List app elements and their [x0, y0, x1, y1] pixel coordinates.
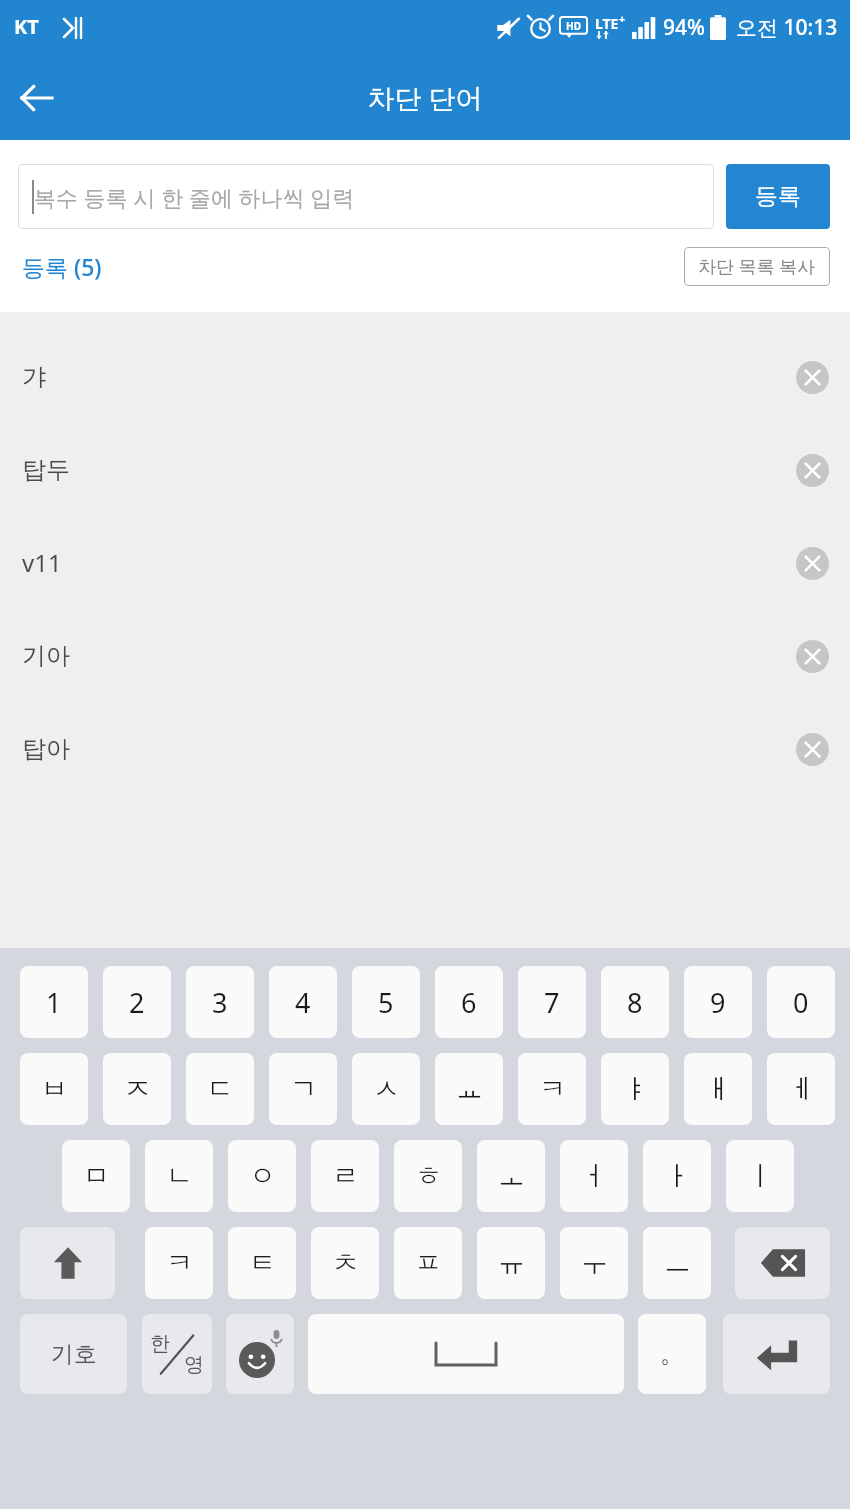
button[interactable]: ㄴ [145, 1140, 213, 1212]
staticText: 차단 목록 복사 [698, 254, 816, 279]
staticText: ㄱ [290, 1072, 317, 1106]
button[interactable]: 0 [767, 966, 835, 1038]
staticText: ㅈ [124, 1072, 151, 1106]
button[interactable]: ㅠ [477, 1227, 545, 1299]
staticText: ㅊ [332, 1246, 359, 1280]
button[interactable]: 기호 [20, 1314, 127, 1394]
button[interactable]: 8 [601, 966, 669, 1038]
button[interactable]: ㄱ [269, 1053, 337, 1125]
staticText: 기호 [51, 1340, 97, 1369]
button[interactable]: Emoji and voice input [226, 1314, 294, 1394]
button[interactable]: 1 [20, 966, 88, 1038]
button[interactable]: ㅈ [103, 1053, 171, 1125]
button[interactable]: ㅋ [518, 1053, 586, 1125]
staticText: 한 [150, 1331, 170, 1356]
button[interactable]: Backspace [735, 1227, 830, 1299]
staticText: 8 [627, 984, 643, 1021]
button[interactable]: ㅐ [684, 1053, 752, 1125]
button[interactable]: ㅡ [643, 1227, 711, 1299]
staticText: 9 [710, 984, 726, 1021]
button[interactable]: ㅛ [435, 1053, 503, 1125]
button[interactable]: ㅁ [62, 1140, 130, 1212]
button[interactable]: ㅌ [228, 1227, 296, 1299]
button[interactable]: Delete 탑두 [788, 446, 836, 494]
button[interactable]: Delete v11 [788, 539, 836, 587]
button[interactable]: 등록 [726, 164, 830, 229]
button[interactable]: 3 [186, 966, 254, 1038]
staticText: 0 [793, 984, 809, 1021]
button[interactable]: ㅣ [726, 1140, 794, 1212]
button[interactable]: v11 [0, 516, 850, 609]
button[interactable]: ㅇ [228, 1140, 296, 1212]
staticText: ㄷ [207, 1072, 234, 1106]
staticText: ㅔ [788, 1072, 815, 1106]
button[interactable]: Enter [723, 1314, 830, 1394]
button[interactable]: 탑아 [0, 702, 850, 795]
staticText: ㅁ [83, 1159, 110, 1193]
staticText: 3 [212, 984, 228, 1021]
button[interactable]: Delete 기아 [788, 632, 836, 680]
staticText: ㅐ [705, 1072, 732, 1106]
button[interactable]: ㅎ [394, 1140, 462, 1212]
staticText: ㅇ [249, 1159, 276, 1193]
staticText: 등록 [755, 182, 801, 211]
button[interactable]: 4 [269, 966, 337, 1038]
button[interactable]: ㅋ [145, 1227, 213, 1299]
button[interactable]: 등록 (5) [22, 251, 102, 282]
button[interactable]: Back [8, 69, 66, 127]
button[interactable]: 2 [103, 966, 171, 1038]
staticText: ㅓ [581, 1159, 608, 1193]
button[interactable]: ㅂ [20, 1053, 88, 1125]
staticText: HD [566, 19, 581, 33]
button[interactable]: Delete 갸 [788, 353, 836, 401]
staticText: ㅅ [373, 1072, 400, 1106]
staticText: 차단 단어 [367, 79, 483, 116]
staticText: ㅗ [498, 1159, 525, 1193]
button[interactable]: ㅗ [477, 1140, 545, 1212]
button[interactable]: ㅑ [601, 1053, 669, 1125]
button[interactable]: ㅔ [767, 1053, 835, 1125]
button[interactable]: ㅊ [311, 1227, 379, 1299]
button[interactable]: Space [308, 1314, 624, 1394]
staticText: 갸 [22, 362, 46, 392]
button[interactable]: ㅅ [352, 1053, 420, 1125]
button[interactable]: 복수 등록 시 한 줄에 하나씩 입력 [18, 164, 714, 229]
button[interactable]: Shift [20, 1227, 115, 1299]
staticText: ㅍ [415, 1246, 442, 1280]
button[interactable]: Korean English toggle [142, 1314, 212, 1394]
button[interactable]: ㄹ [311, 1140, 379, 1212]
staticText: LTE [595, 14, 619, 33]
button[interactable]: 갸 [0, 330, 850, 423]
button[interactable]: ㄷ [186, 1053, 254, 1125]
staticText: 기아 [22, 641, 70, 671]
button[interactable]: 7 [518, 966, 586, 1038]
staticText: ㄴ [166, 1159, 193, 1193]
button[interactable]: 6 [435, 966, 503, 1038]
staticText: ㅡ [664, 1246, 691, 1280]
button[interactable]: 탑두 [0, 423, 850, 516]
staticText: 2 [129, 984, 145, 1021]
button[interactable]: 기아 [0, 609, 850, 702]
button[interactable]: ㅍ [394, 1227, 462, 1299]
staticText: 4 [295, 984, 311, 1021]
staticText: ㅏ [664, 1159, 691, 1193]
button[interactable]: ㅓ [560, 1140, 628, 1212]
button[interactable]: 。 [638, 1314, 706, 1394]
button[interactable]: 9 [684, 966, 752, 1038]
button[interactable]: Delete 탑아 [788, 725, 836, 773]
staticText: 94% [663, 13, 705, 42]
staticText: 1 [46, 984, 62, 1021]
button[interactable]: 5 [352, 966, 420, 1038]
staticText: ㅠ [498, 1246, 525, 1280]
button[interactable]: 차단 목록 복사 [684, 247, 830, 286]
button[interactable]: ㅜ [560, 1227, 628, 1299]
staticText: ㅌ [249, 1246, 276, 1280]
button[interactable]: ㅏ [643, 1140, 711, 1212]
staticText: ㅋ [166, 1246, 193, 1280]
staticText: ㅣ [747, 1159, 774, 1193]
staticText: ㅎ [415, 1159, 442, 1193]
staticText: ㅂ [41, 1072, 68, 1106]
staticText: 탑아 [22, 734, 70, 764]
staticText: ㅑ [622, 1072, 649, 1106]
staticText: 。 [660, 1339, 684, 1369]
